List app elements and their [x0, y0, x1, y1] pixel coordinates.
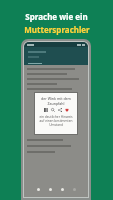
- button[interactable]: [24, 47, 88, 65]
- button[interactable]: Page dot: [37, 188, 40, 191]
- button[interactable]: der Wink mit dem Zaunpfahl: [35, 93, 77, 134]
- other: Dictionary: [44, 108, 48, 112]
- staticText: Sprache wie ein: [25, 11, 88, 22]
- button[interactable]: Page dot: [73, 188, 76, 191]
- button[interactable]: Page dot: [61, 188, 64, 191]
- staticText: der Wink mit dem Zaunpfahl: [41, 96, 71, 106]
- other: Favorite: [65, 108, 69, 112]
- button[interactable]: Page dot: [49, 188, 52, 191]
- staticText: Muttersprachler: [24, 24, 90, 35]
- other: Share: [58, 108, 62, 112]
- other: Search: [51, 108, 55, 112]
- staticText: ein deutlicher Hinweis auf einen bestimm…: [39, 115, 73, 127]
